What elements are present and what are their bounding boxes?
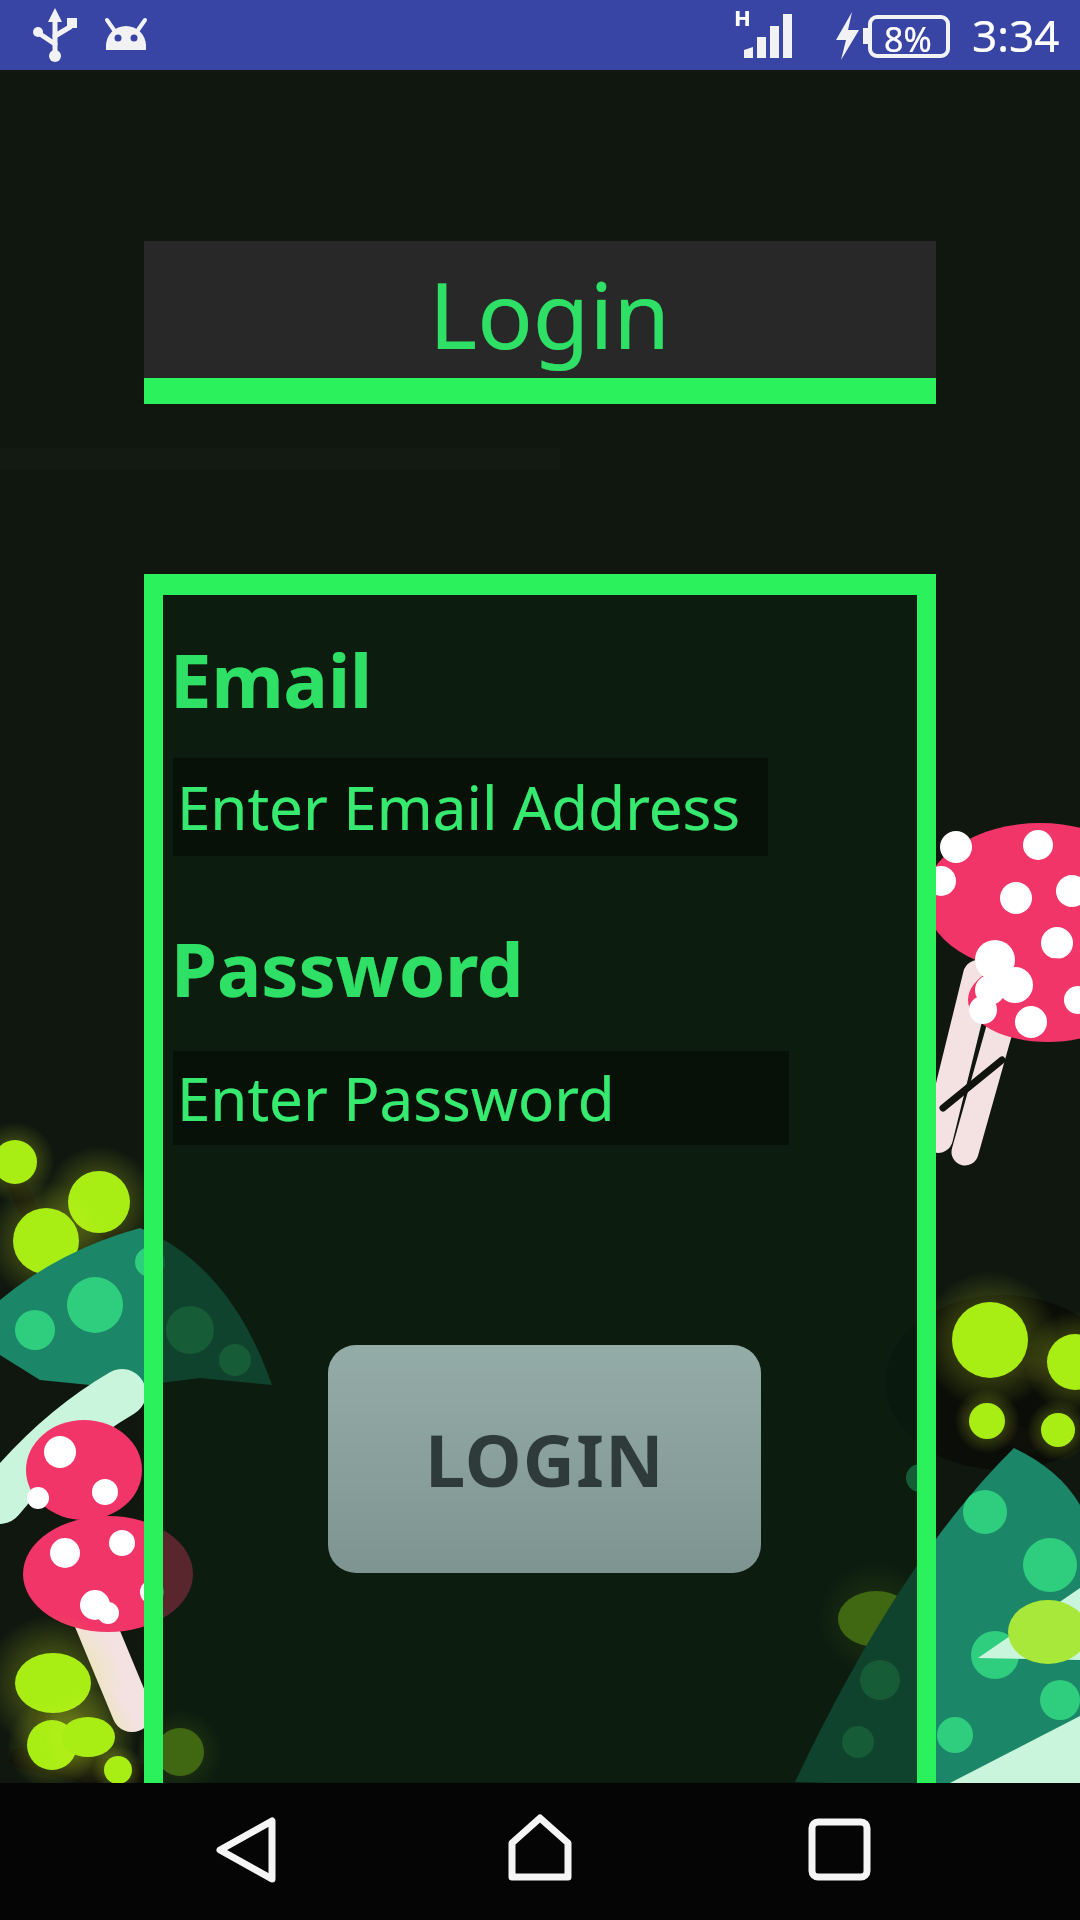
staticText: 3:34 — [972, 5, 1060, 65]
staticText: 8% — [884, 16, 932, 62]
staticText: LOGIN — [425, 1410, 665, 1508]
button[interactable] — [490, 1805, 590, 1905]
staticText: H — [734, 2, 751, 32]
button[interactable]: Enter Email Address — [173, 758, 768, 856]
button[interactable] — [196, 1805, 296, 1905]
button[interactable]: LOGIN — [328, 1345, 761, 1573]
button[interactable] — [790, 1805, 890, 1905]
staticText: Enter Email Address — [177, 766, 741, 848]
staticText: Login — [429, 251, 671, 376]
staticText: Password — [171, 918, 524, 1019]
staticText: Email — [170, 629, 373, 730]
staticText: Enter Password — [177, 1057, 615, 1139]
button[interactable]: Enter Password — [173, 1051, 789, 1145]
